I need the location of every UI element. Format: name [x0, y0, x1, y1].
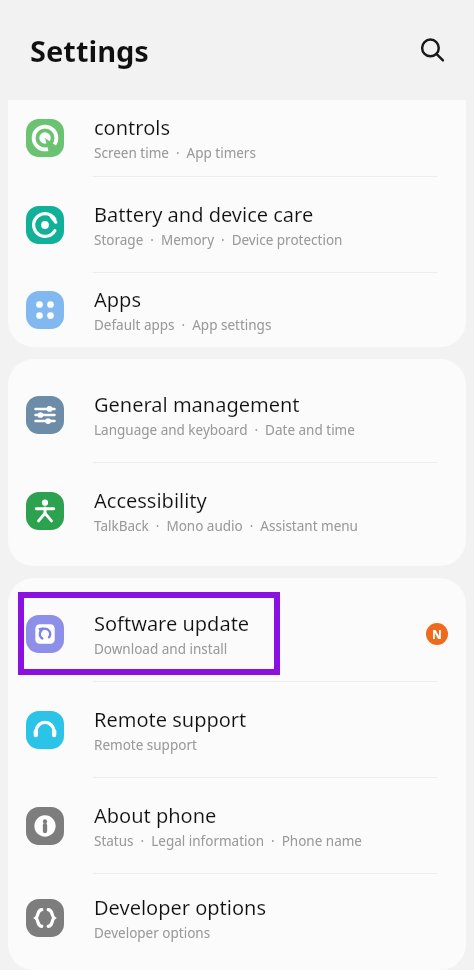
staticText: Storage · Memory · Device protection: [94, 231, 343, 249]
staticText: Default apps · App settings: [94, 316, 272, 334]
button[interactable]: Software update: [8, 586, 466, 681]
staticText: General management: [94, 391, 300, 418]
button[interactable]: Accessibility: [8, 463, 466, 558]
staticText: Remote support: [94, 736, 197, 754]
staticText: Developer options: [94, 894, 267, 921]
staticText: Battery and device care: [94, 201, 314, 228]
button[interactable]: General management: [8, 367, 466, 462]
button[interactable]: Search: [410, 28, 454, 72]
staticText: TalkBack · Mono audio · Assistant menu: [94, 517, 358, 535]
staticText: Remote support: [94, 706, 247, 733]
staticText: N: [432, 626, 442, 642]
button[interactable]: About phone: [8, 778, 466, 873]
staticText: Developer options: [94, 924, 211, 942]
button[interactable]: Apps: [8, 273, 466, 347]
staticText: Download and install: [94, 640, 228, 658]
staticText: About phone: [94, 802, 217, 829]
button[interactable]: Remote support: [8, 682, 466, 777]
staticText: Software update: [94, 610, 250, 637]
staticText: Apps: [94, 286, 141, 313]
staticText: controls: [94, 114, 170, 141]
button[interactable]: Developer options: [8, 874, 466, 962]
button[interactable]: controls: [8, 100, 466, 176]
button[interactable]: Battery and device care: [8, 177, 466, 272]
staticText: Accessibility: [94, 487, 207, 514]
staticText: Screen time · App timers: [94, 144, 256, 162]
staticText: Status · Legal information · Phone name: [94, 832, 362, 850]
staticText: Settings: [30, 31, 149, 70]
staticText: Language and keyboard · Date and time: [94, 421, 355, 439]
